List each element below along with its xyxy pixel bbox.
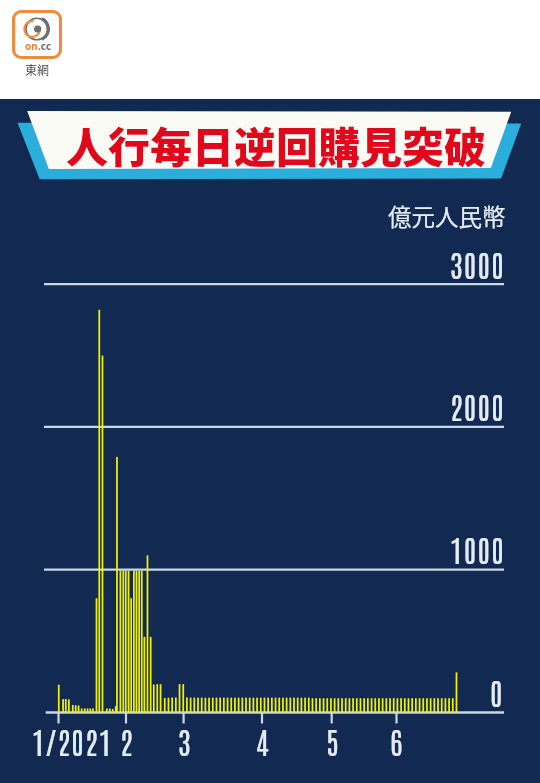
- staticText: 3000: [450, 244, 505, 283]
- staticText: 2000: [450, 386, 505, 425]
- staticText: 3: [178, 721, 192, 760]
- staticText: 東網: [12, 61, 62, 78]
- staticText: 1000: [450, 529, 505, 568]
- staticText: .cc: [38, 39, 52, 53]
- staticText: 0: [490, 672, 504, 711]
- staticText: 5: [326, 721, 340, 760]
- staticText: 億元人民幣: [388, 199, 506, 233]
- staticText: on: [25, 39, 38, 53]
- staticText: 4: [256, 721, 270, 760]
- button[interactable]: on.cc 東網: [12, 10, 62, 76]
- staticText: 1/2021: [32, 721, 113, 760]
- staticText: 2: [120, 721, 134, 760]
- staticText: 人行每日逆回購見突破: [66, 114, 487, 175]
- staticText: 6: [390, 721, 404, 760]
